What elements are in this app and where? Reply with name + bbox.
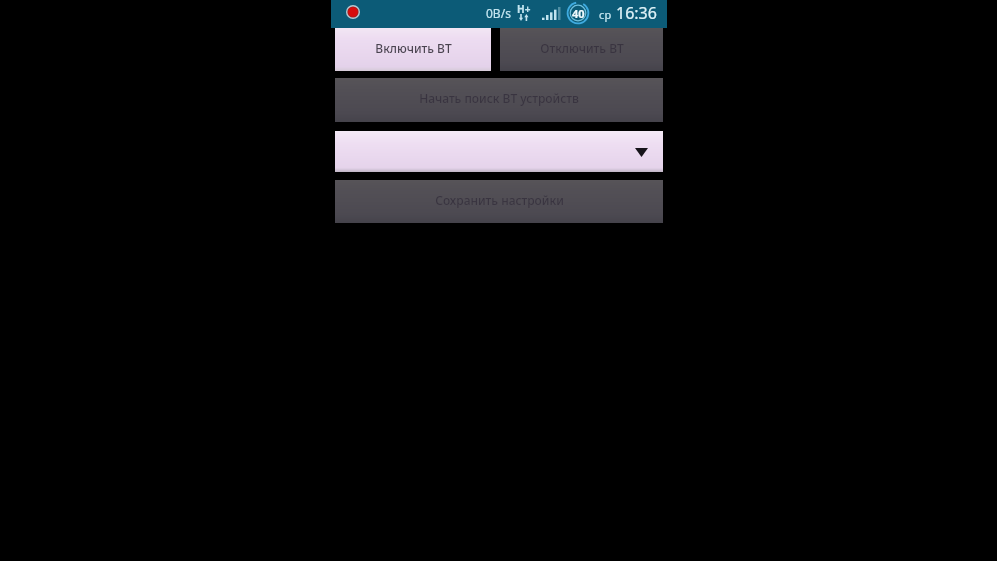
staticText: 0B/s <box>486 5 511 21</box>
staticText: Сохранить настройки <box>435 192 564 208</box>
staticText: Начать поиск BT устройств <box>419 90 579 106</box>
staticText: Включить BT <box>375 40 452 56</box>
staticText: H+ <box>517 2 531 16</box>
staticText: ср <box>599 7 612 22</box>
button[interactable]: Выбрать устройство <box>335 131 663 172</box>
staticText: 16:36 <box>616 2 657 24</box>
button[interactable]: Начать поиск BT устройств <box>335 78 663 122</box>
button[interactable]: Сохранить настройки <box>335 180 663 223</box>
button[interactable]: Включить BT <box>335 28 491 71</box>
staticText: 40 <box>572 6 585 21</box>
staticText: Отключить BT <box>540 40 624 56</box>
button[interactable]: Отключить BT <box>500 28 663 71</box>
